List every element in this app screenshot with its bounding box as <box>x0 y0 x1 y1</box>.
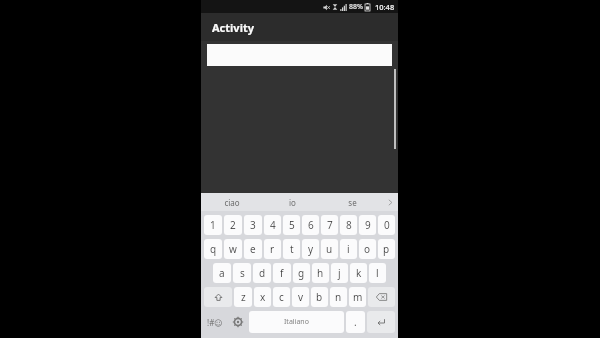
button[interactable]: d <box>253 263 271 283</box>
staticText: u <box>326 242 333 256</box>
staticText: x <box>260 290 266 304</box>
staticText: io <box>289 197 296 208</box>
button[interactable]: v <box>292 287 309 307</box>
staticText: b <box>316 290 323 304</box>
staticText: j <box>338 266 341 280</box>
button[interactable]: w <box>224 239 242 259</box>
staticText: Activity <box>212 20 254 35</box>
button[interactable]: 2 <box>224 215 242 235</box>
button[interactable]: Italiano <box>249 311 344 333</box>
button[interactable]: Shift <box>204 287 232 307</box>
button[interactable]: Settings <box>228 311 247 333</box>
staticText: e <box>250 242 256 256</box>
staticText: 8 <box>346 218 352 232</box>
button[interactable]: 3 <box>244 215 262 235</box>
staticText: l <box>376 266 379 280</box>
button[interactable]: y <box>302 239 319 259</box>
staticText: d <box>259 266 266 280</box>
staticText: v <box>298 290 304 304</box>
button[interactable]: l <box>369 263 386 283</box>
staticText: m <box>353 290 363 304</box>
button[interactable]: 9 <box>359 215 376 235</box>
staticText: 88% <box>349 2 363 12</box>
staticText: 7 <box>327 218 333 232</box>
button[interactable]: c <box>273 287 290 307</box>
staticText: q <box>210 242 217 256</box>
staticText: p <box>383 242 390 256</box>
staticText: i <box>347 242 350 256</box>
staticText: 2 <box>230 218 236 232</box>
button[interactable]: 1 <box>204 215 222 235</box>
button[interactable]: a <box>213 263 231 283</box>
staticText: !#☺ <box>207 317 223 328</box>
staticText: o <box>364 242 371 256</box>
button[interactable]: Symbols <box>204 311 226 333</box>
staticText: z <box>241 290 246 304</box>
button[interactable]: 5 <box>283 215 300 235</box>
button[interactable]: r <box>264 239 281 259</box>
button[interactable]: io <box>262 193 322 211</box>
staticText: s <box>240 266 245 280</box>
staticText: 3 <box>250 218 256 232</box>
button[interactable]: p <box>378 239 395 259</box>
staticText: . <box>354 315 357 329</box>
button[interactable]: g <box>293 263 310 283</box>
button[interactable]: x <box>254 287 271 307</box>
button[interactable]: 6 <box>302 215 319 235</box>
button[interactable]: n <box>330 287 347 307</box>
button[interactable]: o <box>359 239 376 259</box>
button[interactable]: 8 <box>340 215 357 235</box>
staticText: a <box>219 266 225 280</box>
button[interactable]: h <box>312 263 329 283</box>
button[interactable]: f <box>273 263 291 283</box>
staticText: f <box>280 266 284 280</box>
staticText: h <box>317 266 324 280</box>
button[interactable]: z <box>234 287 252 307</box>
staticText: 0 <box>384 218 390 232</box>
button[interactable]: Enter <box>367 311 395 333</box>
button[interactable]: Backspace <box>368 287 395 307</box>
staticText: g <box>298 266 305 280</box>
staticText: 4 <box>270 218 276 232</box>
staticText: w <box>229 242 237 256</box>
staticText: 5 <box>289 218 295 232</box>
button[interactable]: k <box>350 263 367 283</box>
button[interactable]: i <box>340 239 357 259</box>
button[interactable]: t <box>283 239 300 259</box>
button[interactable]: e <box>244 239 262 259</box>
staticText: ciao <box>224 197 240 208</box>
staticText: 9 <box>365 218 371 232</box>
staticText: 1 <box>210 218 216 232</box>
button[interactable]: j <box>331 263 348 283</box>
staticText: c <box>279 290 284 304</box>
staticText: k <box>356 266 362 280</box>
button[interactable]: . <box>346 311 365 333</box>
staticText: 6 <box>308 218 314 232</box>
button[interactable]: ciao <box>201 193 262 211</box>
button[interactable]: s <box>233 263 251 283</box>
staticText: se <box>348 197 357 208</box>
button[interactable]: 7 <box>321 215 338 235</box>
button[interactable]: b <box>311 287 328 307</box>
button[interactable]: q <box>204 239 222 259</box>
staticText: 10:48 <box>375 2 395 12</box>
button[interactable]: More suggestions <box>382 193 398 211</box>
staticText: y <box>308 242 314 256</box>
button[interactable]: u <box>321 239 338 259</box>
staticText: r <box>270 242 275 256</box>
staticText: n <box>335 290 342 304</box>
staticText: t <box>290 242 294 256</box>
button[interactable]: 0 <box>378 215 395 235</box>
button[interactable]: m <box>349 287 366 307</box>
staticText: Italiano <box>284 317 309 327</box>
button[interactable]: 4 <box>264 215 281 235</box>
button[interactable]: se <box>322 193 382 211</box>
